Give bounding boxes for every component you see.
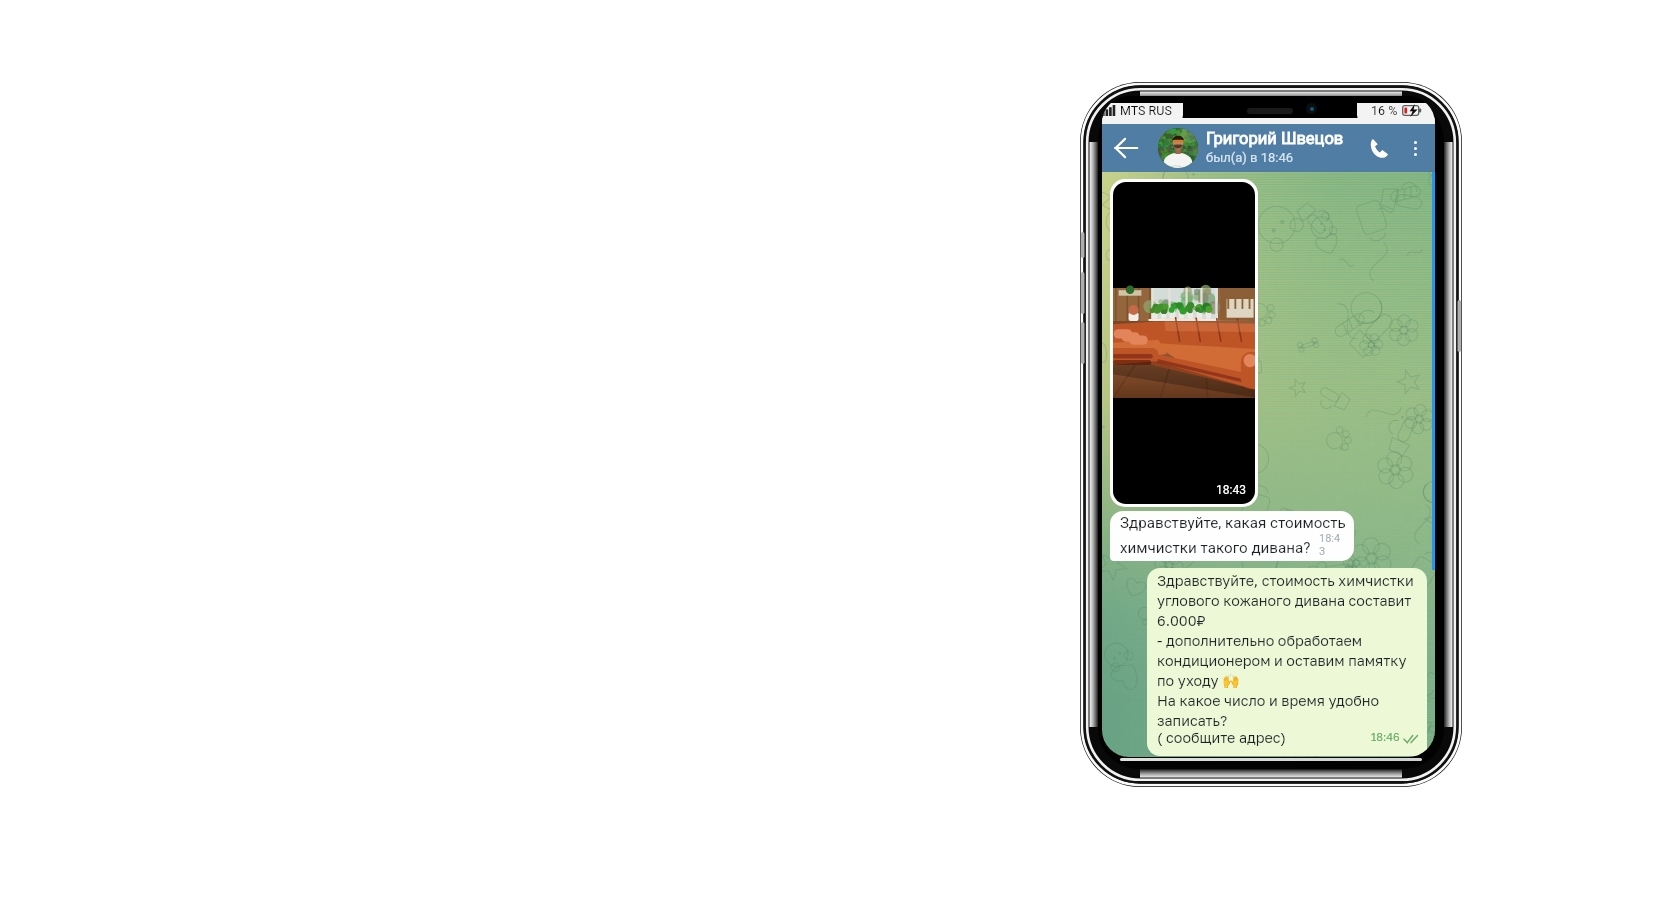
staticText: был(а) в 18:46 xyxy=(1206,150,1294,165)
button[interactable]: Call xyxy=(1358,124,1398,172)
staticText: 16 % xyxy=(1371,103,1398,118)
staticText: 18:43 xyxy=(1319,532,1346,555)
staticText: Здравствуйте, какая стоимость xyxy=(1120,514,1346,532)
staticText: химчистки такого дивана? xyxy=(1120,539,1311,557)
button[interactable]: Photo of sofa xyxy=(1113,182,1255,504)
staticText: 18:46 xyxy=(1371,730,1400,743)
staticText: ( сообщите адрес) xyxy=(1157,729,1286,746)
staticText: MTS RUS xyxy=(1120,103,1172,118)
staticText: Здравствуйте, стоимость химчистки углово… xyxy=(1157,572,1414,729)
button[interactable]: Здравствуйте, какая стоимость xyxy=(1110,511,1354,561)
button[interactable]: Здравствуйте, стоимость химчистки углово… xyxy=(1147,568,1427,756)
staticText: 18:43 xyxy=(1216,483,1246,497)
button[interactable]: More options xyxy=(1398,124,1432,172)
staticText: Григорий Швецов xyxy=(1206,129,1344,148)
button[interactable]: Back xyxy=(1102,124,1150,172)
